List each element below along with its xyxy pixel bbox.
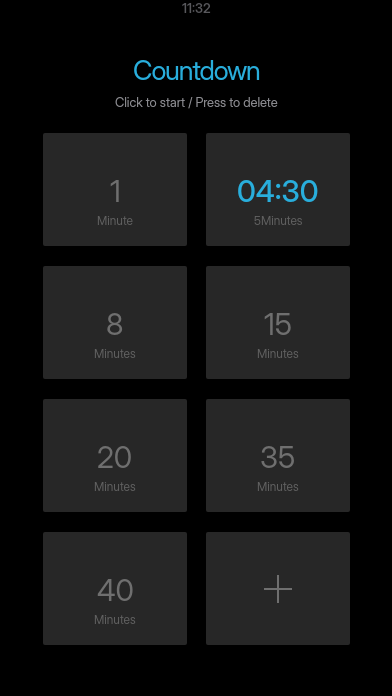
button[interactable]: 20 xyxy=(43,399,187,512)
staticText: Minutes xyxy=(94,479,136,494)
staticText: 5Minutes xyxy=(254,213,303,228)
button[interactable]: 04:30 xyxy=(206,133,350,246)
staticText: 1 xyxy=(110,173,121,209)
staticText: Countdown xyxy=(133,54,260,87)
staticText: 20 xyxy=(97,439,133,475)
staticText: 35 xyxy=(260,439,296,475)
staticText: 40 xyxy=(97,572,134,608)
staticText: Click to start / Press to delete xyxy=(115,94,278,110)
button[interactable]: 40 xyxy=(43,532,187,645)
staticText: 8 xyxy=(106,306,124,342)
button[interactable] xyxy=(206,532,350,645)
button[interactable]: 8 xyxy=(43,266,187,379)
staticText: Minutes xyxy=(257,479,299,494)
button[interactable]: 1 xyxy=(43,133,187,246)
staticText: Minutes xyxy=(94,346,136,361)
staticText: 11:32 xyxy=(182,0,211,16)
button[interactable]: 15 xyxy=(206,266,350,379)
staticText: Minutes xyxy=(94,612,136,627)
staticText: Minutes xyxy=(257,346,299,361)
staticText: Minute xyxy=(97,213,133,228)
staticText: 04:30 xyxy=(237,173,319,209)
button[interactable]: 35 xyxy=(206,399,350,512)
staticText: 15 xyxy=(264,306,293,342)
